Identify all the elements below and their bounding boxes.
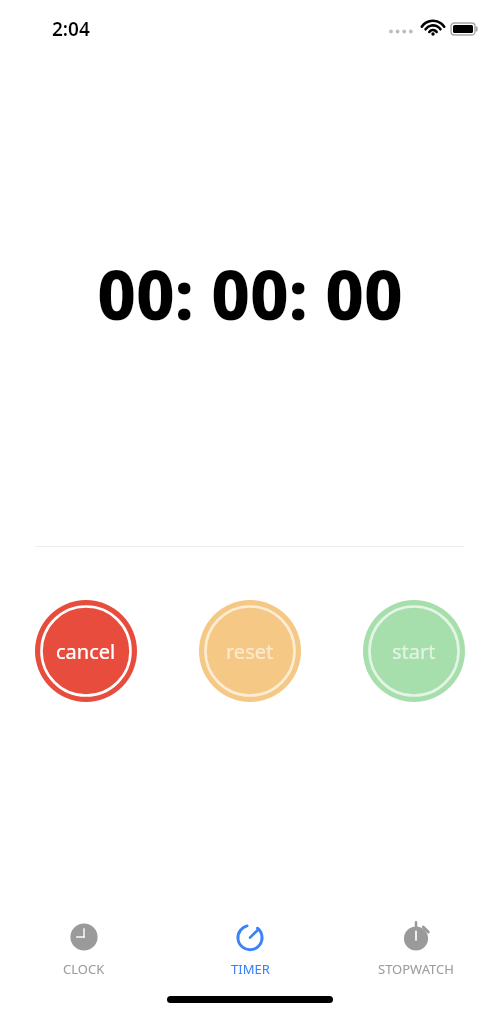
button[interactable]: TIMER — [167, 910, 333, 988]
staticText: start — [392, 638, 436, 665]
staticText: TIMER — [231, 960, 270, 978]
button[interactable]: start — [363, 600, 465, 702]
staticText: cancel — [56, 638, 116, 665]
staticText: reset — [226, 638, 274, 665]
staticText: CLOCK — [63, 960, 105, 978]
button[interactable]: cancel — [35, 600, 137, 702]
staticText: STOPWATCH — [378, 960, 454, 978]
button[interactable]: CLOCK — [0, 910, 167, 988]
staticText: 2:04 — [52, 16, 90, 42]
button[interactable]: reset — [199, 600, 301, 702]
button[interactable]: STOPWATCH — [333, 910, 499, 988]
staticText: 00: 00: 00 — [97, 248, 403, 339]
